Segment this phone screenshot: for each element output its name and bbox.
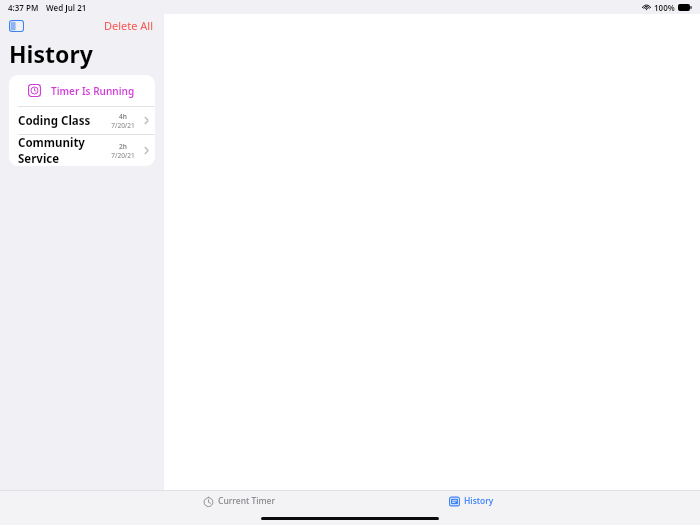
staticText: Current Timer (218, 495, 276, 507)
button[interactable]: Community (9, 135, 155, 166)
staticText: Delete All (104, 18, 154, 33)
staticText: 4h (119, 112, 127, 121)
staticText: History (464, 495, 494, 507)
staticText: Service (18, 151, 60, 166)
staticText: Coding Class (18, 113, 91, 129)
button[interactable]: Coding Class (9, 107, 155, 134)
button[interactable]: Toggle Sidebar (6, 17, 26, 35)
staticText: History (9, 38, 93, 69)
button[interactable]: History (445, 492, 498, 510)
staticText: 7/20/21 (111, 121, 135, 130)
staticText: 2h (119, 142, 127, 151)
staticText: 100% (654, 2, 675, 13)
staticText: Timer Is Running (51, 84, 135, 98)
button[interactable]: Delete All (102, 16, 156, 35)
staticText: 7/20/21 (111, 151, 135, 160)
button[interactable]: Timer Is Running (9, 75, 155, 106)
staticText: 4:37 PM (8, 2, 39, 13)
button[interactable]: Current Timer (199, 492, 280, 510)
staticText: Wed Jul 21 (46, 2, 87, 13)
staticText: Community (18, 135, 85, 151)
